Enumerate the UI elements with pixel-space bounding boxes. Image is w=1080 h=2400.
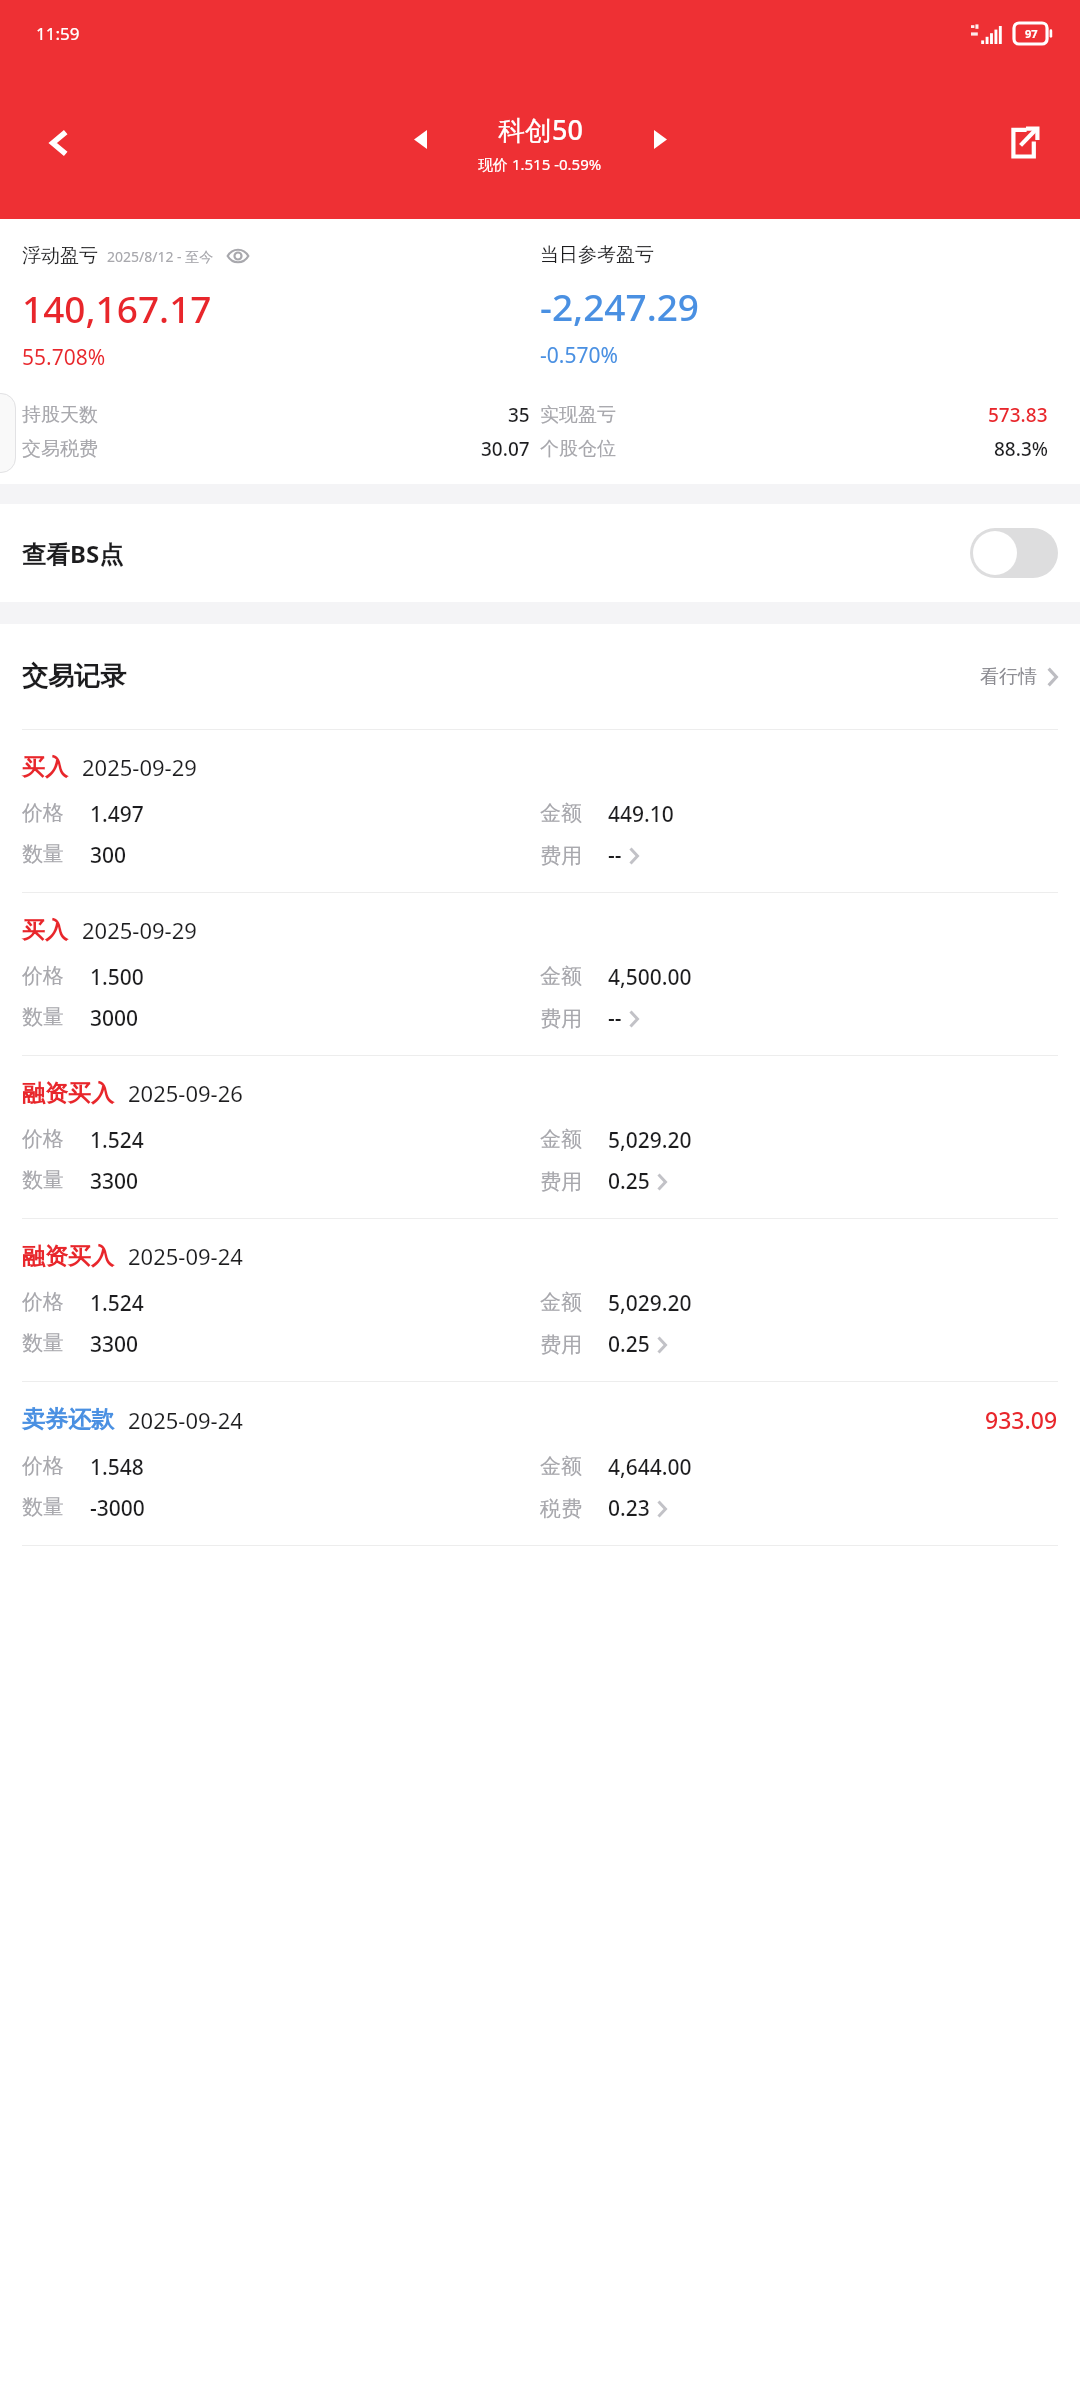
- staticText: 持股天数: [22, 403, 98, 427]
- staticText: 30.07: [481, 436, 530, 462]
- staticText: 金额: [540, 1289, 582, 1315]
- staticText: 1.500: [90, 963, 144, 992]
- staticText: 97: [1025, 26, 1038, 41]
- staticText: 2025-09-29: [82, 915, 197, 945]
- staticText: 2025-09-24: [128, 1241, 243, 1271]
- staticText: 0.23: [608, 1494, 650, 1523]
- staticText: 数量: [22, 1167, 64, 1193]
- staticText: 1.524: [90, 1126, 144, 1155]
- staticText: -0.570%: [540, 341, 618, 370]
- staticText: 4,644.00: [608, 1453, 692, 1482]
- staticText: 2025/8/12 - 至今: [107, 247, 214, 266]
- staticText: 1.548: [90, 1453, 144, 1482]
- button[interactable]: 买入: [0, 730, 1080, 893]
- staticText: 买入: [22, 753, 68, 782]
- staticText: 4,500.00: [608, 963, 692, 992]
- staticText: 55.708%: [22, 343, 106, 372]
- button[interactable]: 买入: [0, 893, 1080, 1056]
- staticText: 价格: [22, 963, 64, 989]
- staticText: 金额: [540, 1126, 582, 1152]
- staticText: 价格: [22, 1289, 64, 1315]
- staticText: 0.25: [608, 1167, 650, 1196]
- staticText: -2,247.29: [540, 281, 700, 331]
- staticText: 价格: [22, 800, 64, 826]
- staticText: 交易税费: [22, 437, 98, 461]
- button[interactable]: 查看BS点: [0, 504, 1080, 602]
- staticText: 费用: [540, 1006, 582, 1032]
- staticText: 5,029.20: [608, 1126, 692, 1155]
- staticText: 数量: [22, 841, 64, 867]
- staticText: 2025-09-26: [128, 1078, 243, 1108]
- staticText: 金额: [540, 963, 582, 989]
- staticText: 买入: [22, 916, 68, 945]
- button[interactable]: Toggle visibility: [225, 243, 251, 269]
- staticText: 现价 1.515 -0.59%: [478, 154, 602, 174]
- staticText: 88.3%: [994, 436, 1048, 462]
- staticText: 费用: [540, 1169, 582, 1195]
- staticText: 金额: [540, 800, 582, 826]
- staticText: 费用: [540, 1332, 582, 1358]
- staticText: 数量: [22, 1330, 64, 1356]
- staticText: 2025-09-29: [82, 752, 197, 782]
- button[interactable]: Show BS points: [970, 528, 1058, 578]
- staticText: 2025-09-24: [128, 1405, 243, 1435]
- staticText: 价格: [22, 1453, 64, 1479]
- staticText: 税费: [540, 1496, 582, 1522]
- button[interactable]: 卖券还款: [0, 1382, 1080, 1546]
- staticText: 查看BS点: [22, 537, 124, 570]
- staticText: 金额: [540, 1453, 582, 1479]
- button[interactable]: Back: [34, 117, 86, 169]
- staticText: 140,167.17: [22, 283, 212, 333]
- staticText: 浮动盈亏: [22, 244, 98, 268]
- staticText: --: [608, 1004, 622, 1033]
- staticText: 融资买入: [22, 1242, 114, 1271]
- staticText: 个股仓位: [540, 437, 616, 461]
- staticText: 5,029.20: [608, 1289, 692, 1318]
- button[interactable]: 融资买入: [0, 1056, 1080, 1219]
- button[interactable]: Drawer handle: [0, 393, 16, 473]
- button[interactable]: 融资买入: [0, 1219, 1080, 1382]
- button[interactable]: Share: [996, 116, 1050, 170]
- button[interactable]: Previous stock: [397, 116, 443, 162]
- staticText: 3300: [90, 1167, 139, 1196]
- staticText: 当日参考盈亏: [540, 243, 654, 267]
- staticText: 11:59: [36, 22, 80, 45]
- staticText: 3000: [90, 1004, 139, 1033]
- staticText: 融资买入: [22, 1079, 114, 1108]
- staticText: 价格: [22, 1126, 64, 1152]
- staticText: 看行情: [980, 665, 1037, 689]
- staticText: 实现盈亏: [540, 403, 616, 427]
- staticText: 1.497: [90, 800, 144, 829]
- staticText: 35: [508, 402, 530, 428]
- staticText: 300: [90, 841, 127, 870]
- staticText: 数量: [22, 1004, 64, 1030]
- staticText: 449.10: [608, 800, 674, 829]
- staticText: 1.524: [90, 1289, 144, 1318]
- staticText: 费用: [540, 843, 582, 869]
- staticText: 933.09: [985, 1404, 1058, 1435]
- staticText: 0.25: [608, 1330, 650, 1359]
- staticText: --: [608, 841, 622, 870]
- staticText: 卖券还款: [22, 1405, 114, 1434]
- staticText: 数量: [22, 1494, 64, 1520]
- staticText: 科创50: [498, 111, 583, 148]
- button[interactable]: Next stock: [637, 116, 683, 162]
- staticText: 3300: [90, 1330, 139, 1359]
- staticText: 交易记录: [22, 660, 126, 693]
- button[interactable]: 看行情: [968, 659, 1058, 695]
- staticText: -3000: [90, 1494, 145, 1523]
- staticText: 573.83: [988, 402, 1048, 428]
